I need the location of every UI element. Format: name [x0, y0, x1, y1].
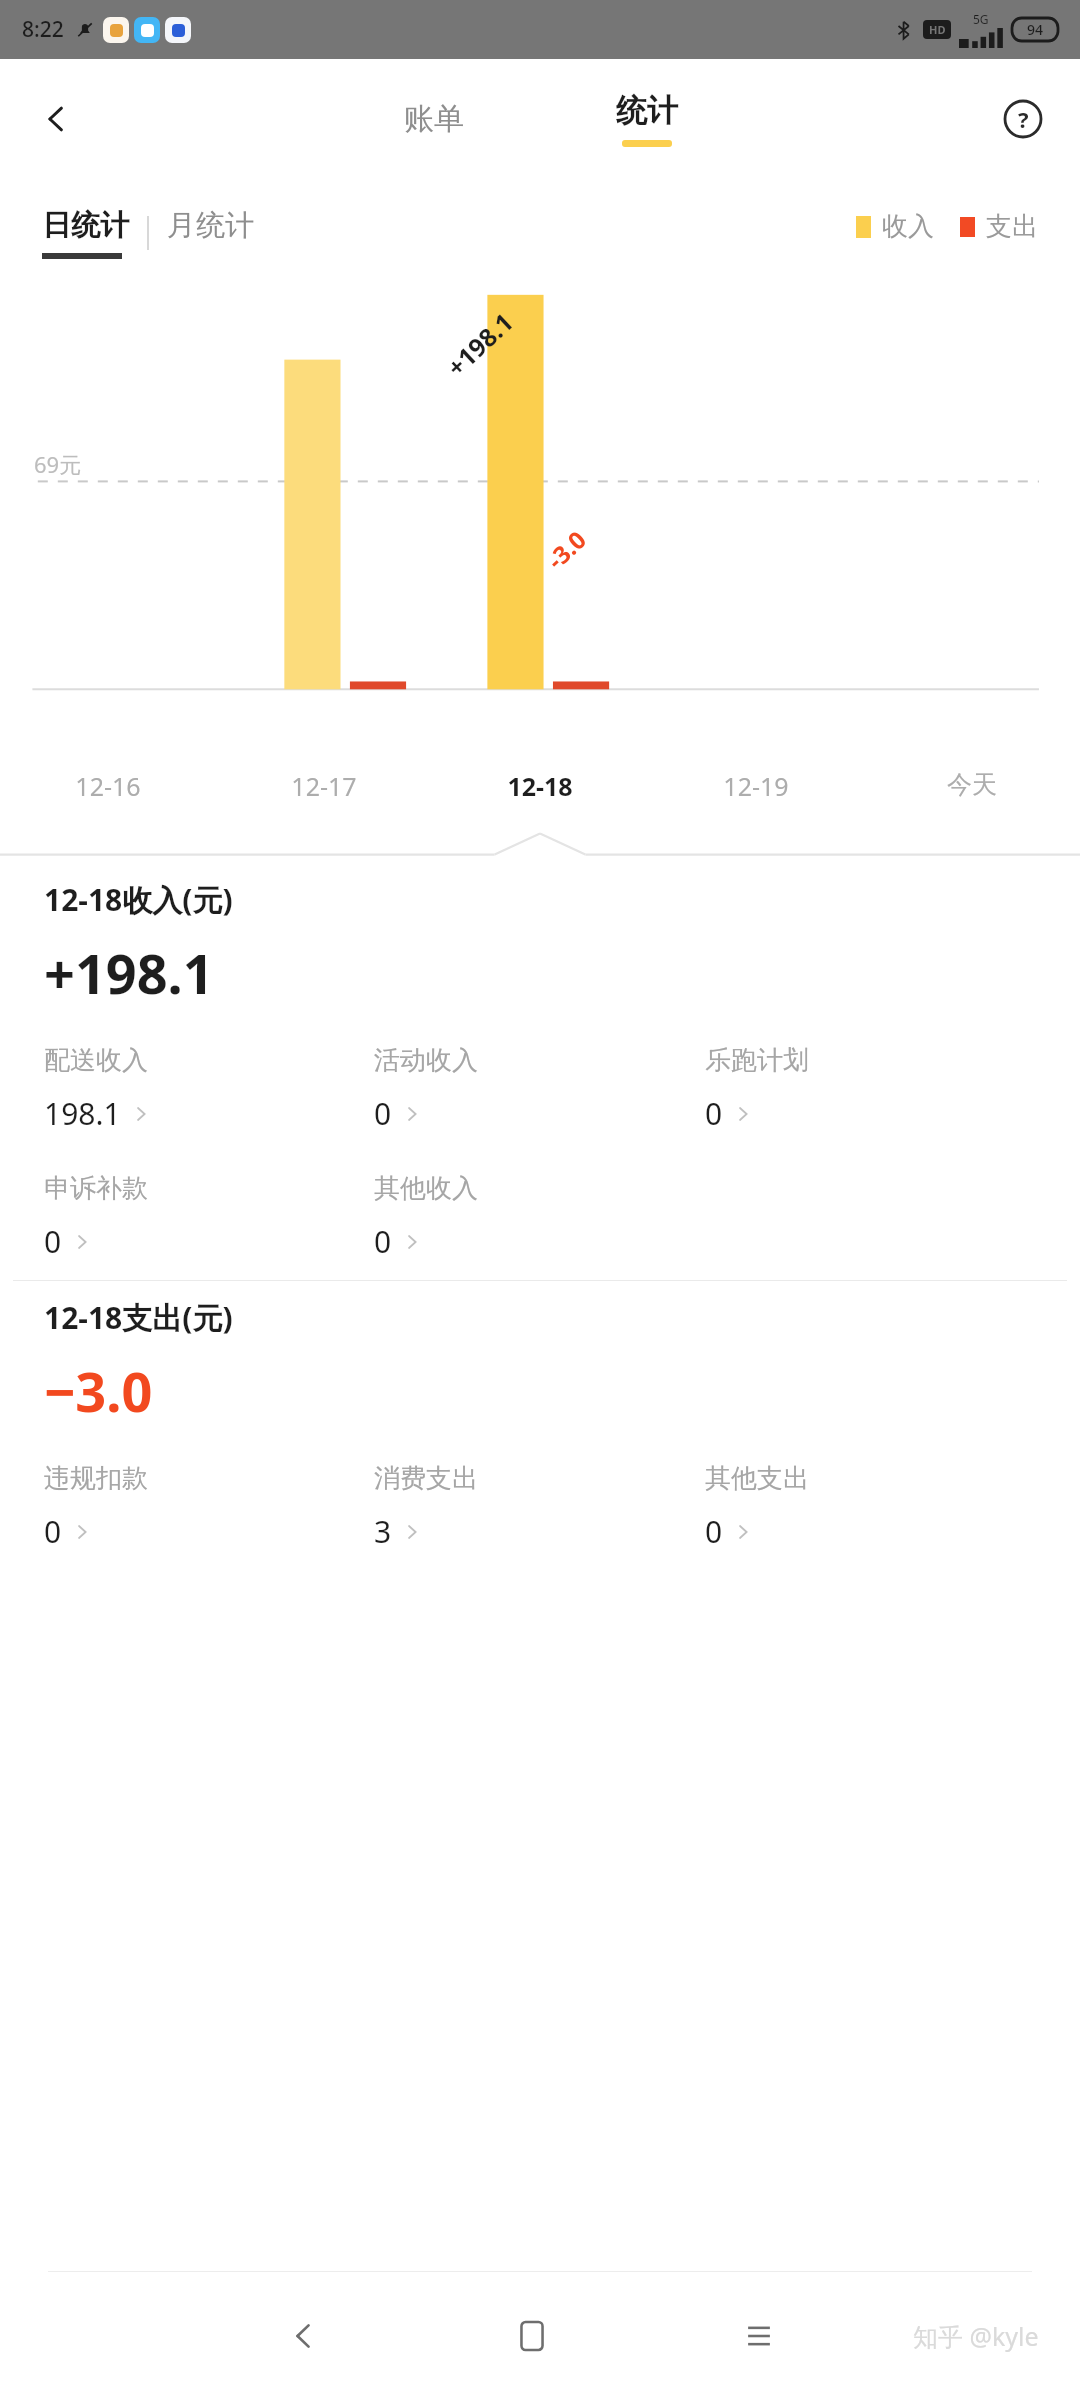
- staticText: 94: [1027, 20, 1044, 39]
- staticText: 0: [44, 1511, 62, 1552]
- staticText: 支出: [986, 210, 1038, 243]
- button[interactable]: 违规扣款: [44, 1462, 158, 1556]
- staticText: 69元: [34, 449, 82, 479]
- button[interactable]: 申诉补款: [44, 1172, 158, 1266]
- staticText: 0: [705, 1093, 723, 1134]
- button[interactable]: 日统计: [42, 207, 129, 259]
- button[interactable]: Back: [190, 2272, 418, 2400]
- staticText: 12-19: [723, 769, 789, 803]
- staticText: 12-18收入(元): [44, 879, 233, 920]
- staticText: 3: [374, 1511, 392, 1552]
- staticText: 5G: [973, 11, 989, 27]
- button[interactable]: 其他收入: [374, 1172, 488, 1266]
- staticText: 8:22: [22, 15, 64, 44]
- staticText: +198.1: [439, 305, 520, 383]
- staticText: 活动收入: [374, 1044, 478, 1077]
- button[interactable]: Home: [418, 2272, 645, 2400]
- staticText: ?: [1018, 104, 1029, 134]
- button[interactable]: 活动收入: [374, 1044, 488, 1138]
- staticText: 配送收入: [44, 1044, 148, 1077]
- staticText: 12-18支出(元): [44, 1297, 233, 1338]
- staticText: 0: [374, 1093, 392, 1134]
- button[interactable]: Menu: [645, 2272, 872, 2400]
- staticText: 0: [705, 1511, 723, 1552]
- button[interactable]: 配送收入: [44, 1044, 161, 1138]
- button[interactable]: Help: [992, 88, 1054, 150]
- staticText: HD: [929, 22, 946, 37]
- button[interactable]: 账单: [376, 90, 492, 148]
- staticText: -3.0: [539, 523, 593, 576]
- button[interactable]: 统计: [590, 85, 704, 153]
- staticText: −3.0: [44, 1354, 153, 1428]
- staticText: 知乎 @kyle: [913, 2319, 1039, 2353]
- staticText: 消费支出: [374, 1462, 478, 1495]
- button[interactable]: 今天: [864, 769, 1080, 800]
- staticText: 申诉补款: [44, 1172, 148, 1205]
- button[interactable]: 乐跑计划: [705, 1044, 819, 1138]
- staticText: 其他支出: [705, 1462, 809, 1495]
- button[interactable]: 12-17: [216, 769, 432, 803]
- staticText: +198.1: [44, 936, 214, 1010]
- staticText: 今天: [947, 769, 997, 800]
- staticText: 违规扣款: [44, 1462, 148, 1495]
- staticText: 其他收入: [374, 1172, 478, 1205]
- staticText: 账单: [404, 100, 464, 138]
- staticText: 乐跑计划: [705, 1044, 809, 1077]
- button[interactable]: 消费支出: [374, 1462, 488, 1556]
- staticText: 月统计: [167, 207, 254, 244]
- staticText: 0: [44, 1221, 62, 1262]
- button[interactable]: 12-16: [0, 769, 216, 803]
- staticText: 0: [374, 1221, 392, 1262]
- button[interactable]: 12-19: [648, 769, 864, 803]
- button[interactable]: 12-18: [432, 769, 648, 803]
- staticText: 12-17: [291, 769, 357, 803]
- staticText: 12-16: [75, 769, 141, 803]
- staticText: 12-18: [507, 769, 573, 803]
- staticText: 统计: [616, 91, 678, 130]
- staticText: 日统计: [42, 207, 129, 244]
- staticText: 198.1: [44, 1093, 121, 1134]
- button[interactable]: Back: [24, 87, 88, 151]
- staticText: 收入: [882, 210, 934, 243]
- button[interactable]: 其他支出: [705, 1462, 819, 1556]
- button[interactable]: 月统计: [167, 207, 254, 259]
